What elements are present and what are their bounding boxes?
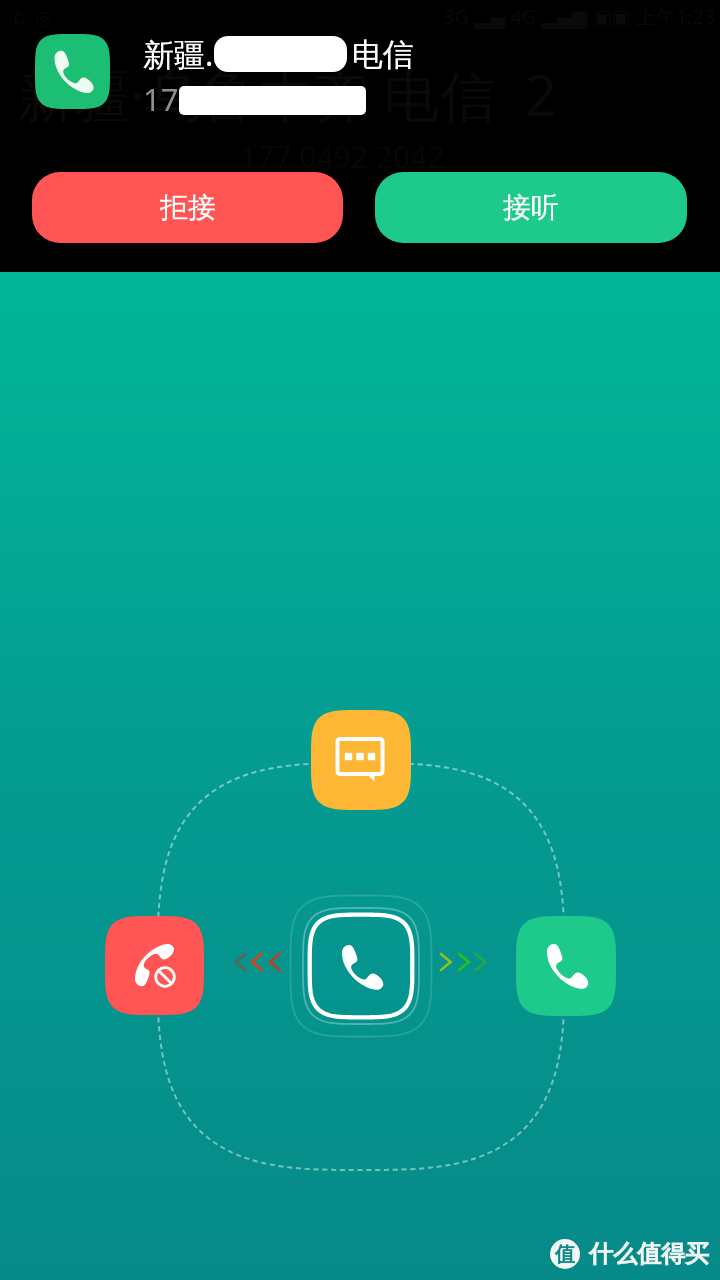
staticText: 拒接 [160,190,216,225]
button[interactable]: Slide to answer [309,914,414,1019]
staticText: 电信 [352,35,414,74]
button[interactable]: 拒接 [32,172,343,243]
staticText: 新疆·乌鲁木齐 电信 2 [18,56,557,132]
staticText: 17 [143,78,179,120]
staticText: 接听 [503,190,559,225]
button[interactable]: Reject call [105,916,204,1015]
staticText: 值 [555,1242,575,1267]
button[interactable]: Reply with message [311,710,411,810]
button[interactable]: Accept call [516,916,616,1016]
staticText: 177 0492 2042 [240,136,445,177]
button[interactable]: 接听 [375,172,687,243]
staticText: 新疆. [143,33,214,75]
staticText: 3G ▂▄ 4G ▂▄▆ ▣▣ 上午1:23 [443,3,716,30]
staticText: 什么值得买 [589,1239,709,1269]
